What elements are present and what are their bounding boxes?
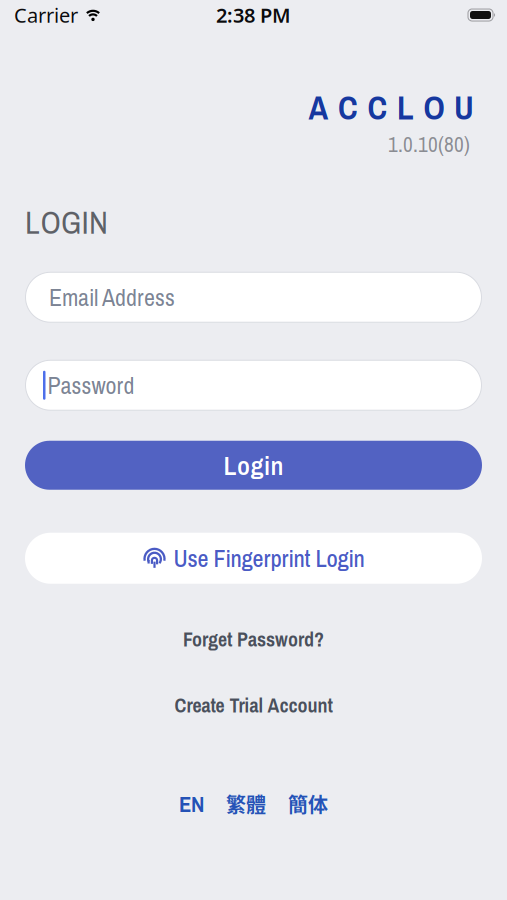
button[interactable]: Password: [25, 360, 482, 411]
button[interactable]: Login: [25, 441, 482, 490]
staticText: Create Trial Account: [174, 692, 332, 719]
button[interactable]: Create Trial Account: [174, 692, 332, 719]
button[interactable]: 簡体: [288, 789, 328, 818]
button[interactable]: Email Address: [25, 272, 482, 323]
button[interactable]: Use Fingerprint Login: [25, 533, 482, 584]
staticText: Email Address: [49, 281, 175, 313]
staticText: 簡体: [288, 789, 328, 818]
staticText: Password: [47, 369, 134, 401]
staticText: ACCLOU: [308, 85, 474, 130]
staticText: Carrier: [14, 2, 78, 28]
button[interactable]: Forget Password?: [183, 626, 324, 653]
button[interactable]: EN: [179, 789, 204, 819]
button[interactable]: 繁體: [226, 789, 266, 818]
staticText: Login: [223, 447, 283, 483]
staticText: LOGIN: [25, 201, 108, 244]
staticText: 1.0.10(80): [388, 130, 470, 159]
staticText: 2:38 PM: [216, 2, 291, 28]
staticText: Forget Password?: [183, 626, 324, 653]
staticText: 繁體: [226, 789, 266, 818]
staticText: EN: [179, 789, 204, 819]
staticText: Use Fingerprint Login: [173, 542, 364, 574]
